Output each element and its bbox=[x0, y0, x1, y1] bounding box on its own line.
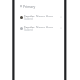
staticText: Sender bbox=[24, 15, 36, 17]
staticText: Primary bbox=[23, 4, 36, 8]
staticText: Name Here bbox=[36, 15, 54, 17]
staticText: Subject bbox=[24, 28, 33, 31]
staticText: Sender bbox=[24, 26, 36, 28]
button[interactable]: Sender bbox=[15, 13, 65, 24]
staticText: Subject bbox=[24, 17, 33, 20]
staticText: Name Here bbox=[36, 26, 54, 28]
button[interactable]: Menu bbox=[15, 0, 65, 12]
button[interactable]: Sender bbox=[15, 24, 65, 35]
